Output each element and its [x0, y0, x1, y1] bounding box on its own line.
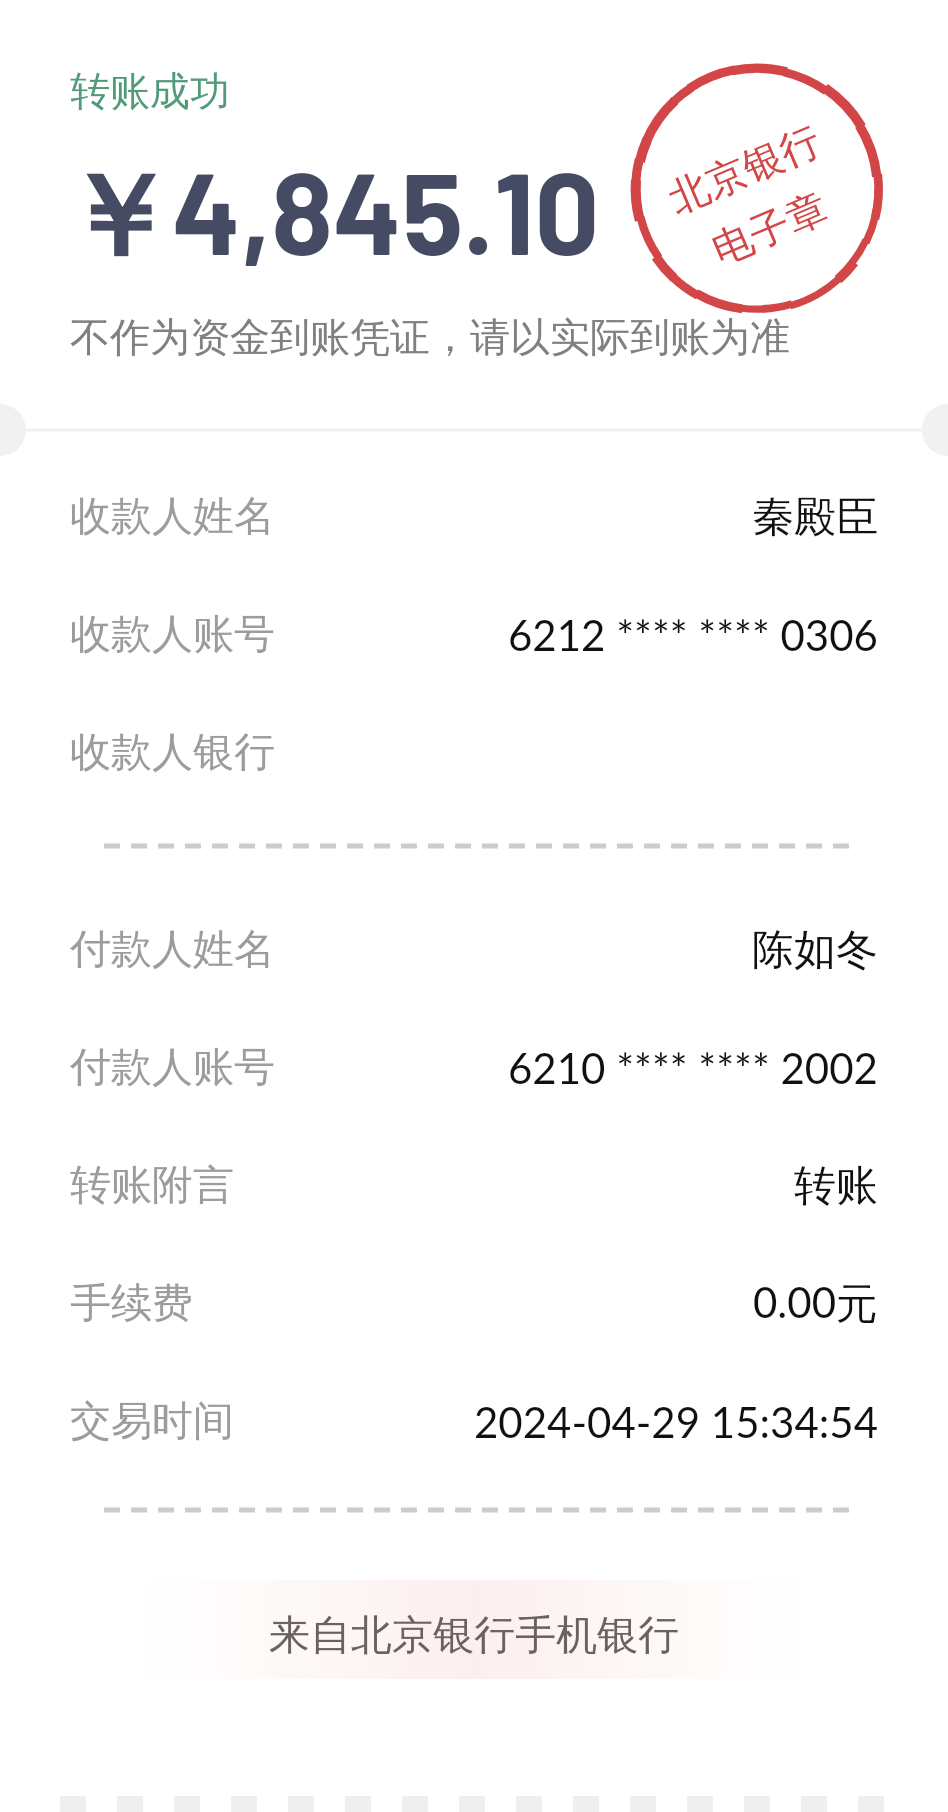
- staticText: 北京银行: [661, 115, 828, 224]
- staticText: 收款人银行: [70, 727, 275, 779]
- staticText: 陈如冬: [752, 924, 878, 977]
- staticText: 手续费: [70, 1278, 193, 1330]
- button[interactable]: 付款人账号: [70, 1009, 878, 1127]
- staticText: 6210 **** **** 2002: [508, 1043, 878, 1093]
- button[interactable]: 收款人账号: [70, 576, 878, 694]
- staticText: 0.00元: [753, 1277, 878, 1331]
- button[interactable]: 收款人银行: [70, 694, 878, 812]
- button[interactable]: 交易时间: [70, 1363, 878, 1481]
- other: 北京银行电子章: [0, 0, 948, 1812]
- button[interactable]: 转账附言: [70, 1127, 878, 1245]
- staticText: 收款人账号: [70, 609, 275, 661]
- button[interactable]: 手续费: [70, 1245, 878, 1363]
- staticText: 2024-04-29 15:34:54: [474, 1397, 878, 1447]
- staticText: 6212 **** **** 0306: [508, 610, 878, 660]
- button[interactable]: 来自北京银行手机银行: [133, 1580, 815, 1679]
- staticText: 秦殿臣: [752, 491, 878, 544]
- staticText: 付款人姓名: [70, 924, 275, 976]
- staticText: 电子章: [704, 182, 834, 275]
- staticText: 转账: [794, 1160, 878, 1213]
- staticText: 交易时间: [70, 1396, 234, 1448]
- staticText: 付款人账号: [70, 1042, 275, 1094]
- staticText: 转账附言: [70, 1160, 234, 1212]
- staticText: ￥: [61, 147, 174, 289]
- button[interactable]: 收款人姓名: [70, 458, 878, 576]
- button[interactable]: 付款人姓名: [70, 891, 878, 1009]
- staticText: 来自北京银行手机银行: [269, 1610, 679, 1662]
- staticText: 转账成功: [70, 66, 230, 116]
- staticText: 收款人姓名: [70, 491, 275, 543]
- staticText: 不作为资金到账凭证，请以实际到账为准: [70, 312, 790, 362]
- staticText: 4,845.10: [172, 141, 600, 278]
